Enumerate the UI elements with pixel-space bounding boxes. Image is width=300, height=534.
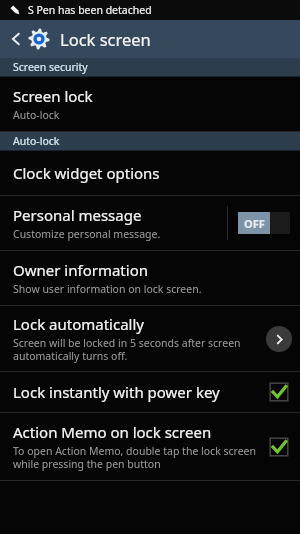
button[interactable]: Personal message toggle, off (238, 212, 290, 234)
button[interactable]: Action Memo on lock screen (0, 413, 300, 480)
button[interactable]: Lock automatically (0, 306, 300, 372)
staticText: Personal message (13, 205, 142, 225)
button[interactable]: Lock automatically options (266, 326, 292, 352)
staticText: Screen security (13, 60, 88, 74)
staticText: Auto-lock (13, 108, 60, 122)
staticText: Lock screen (60, 28, 151, 50)
staticText: Auto-lock (13, 134, 60, 148)
button[interactable]: Lock instantly with power key (0, 372, 300, 413)
staticText: Customize personal message. (13, 227, 161, 241)
button[interactable]: Owner information (0, 251, 300, 306)
button[interactable]: Personal message (0, 196, 300, 251)
button[interactable]: Back (6, 29, 26, 49)
button[interactable]: Clock widget options (0, 151, 300, 196)
button[interactable]: Back (0, 20, 300, 58)
staticText: Show user information on lock screen. (13, 282, 202, 296)
button[interactable]: Action Memo on lock screen checkbox, che… (268, 436, 290, 458)
staticText: Action Memo on lock screen (13, 422, 212, 442)
staticText: Screen lock (13, 86, 93, 106)
staticText: Screen will be locked in 5 seconds after… (13, 336, 260, 363)
staticText: S Pen has been detached (28, 3, 152, 17)
staticText: Lock automatically (13, 314, 144, 334)
button[interactable]: Screen lock (0, 77, 300, 132)
staticText: OFF (244, 216, 265, 231)
staticText: Lock instantly with power key (13, 382, 220, 402)
staticText: Owner information (13, 260, 148, 280)
staticText: To open Action Memo, double tap the lock… (13, 444, 260, 471)
staticText: Clock widget options (13, 163, 160, 183)
button[interactable]: Lock instantly with power key checkbox, … (268, 381, 290, 403)
